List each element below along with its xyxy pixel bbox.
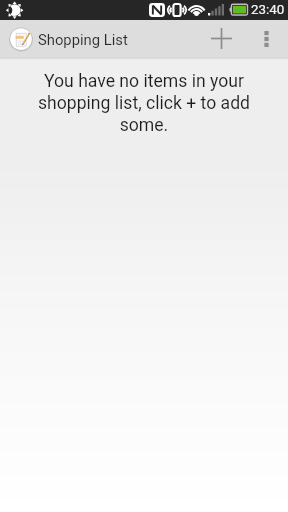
staticText: Shopping List — [38, 31, 128, 48]
button[interactable]: Shopping List — [0, 27, 134, 51]
staticText: 23:40 — [251, 2, 285, 18]
staticText: You have no items in your shopping list,… — [14, 71, 274, 136]
button[interactable]: Add item — [198, 20, 244, 57]
button[interactable]: More options — [244, 20, 288, 57]
